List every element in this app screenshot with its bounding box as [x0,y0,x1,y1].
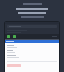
button[interactable]: Run [7,35,10,38]
button[interactable]: Debug [13,35,16,38]
button[interactable] [5,40,59,43]
button[interactable] [7,25,57,28]
